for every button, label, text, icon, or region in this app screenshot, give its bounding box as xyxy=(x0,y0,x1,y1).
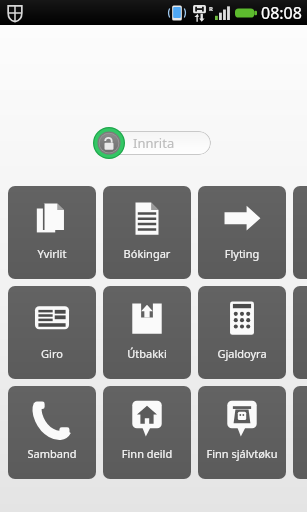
staticText: Útbakki xyxy=(103,346,191,361)
staticText: Finn sjálvtøku xyxy=(198,446,286,461)
staticText: Giro xyxy=(8,346,96,361)
button[interactable]: More xyxy=(293,286,307,379)
button[interactable]: Finn deild xyxy=(103,386,191,479)
button[interactable]: Samband xyxy=(8,386,96,479)
staticText: Innrita xyxy=(133,134,175,152)
staticText: Yvirlit xyxy=(8,246,96,261)
staticText: R xyxy=(209,5,213,13)
button[interactable]: Útbakki xyxy=(103,286,191,379)
staticText: Bókingar xyxy=(103,246,191,261)
button[interactable]: More xyxy=(293,386,307,479)
button[interactable]: Giro xyxy=(8,286,96,379)
staticText: Samband xyxy=(8,446,96,461)
staticText: 08:08 xyxy=(261,2,302,24)
button[interactable]: Innrita xyxy=(95,131,211,155)
button[interactable]: Gjaldoyra xyxy=(198,286,286,379)
button[interactable]: More xyxy=(293,186,307,279)
staticText: Flyting xyxy=(198,246,286,261)
button[interactable]: Finn sjálvtøku xyxy=(198,386,286,479)
staticText: Finn deild xyxy=(103,446,191,461)
staticText: Gjaldoyra xyxy=(198,346,286,361)
button[interactable]: Flyting xyxy=(198,186,286,279)
button[interactable]: Innrita login xyxy=(93,127,125,159)
button[interactable]: Yvirlit xyxy=(8,186,96,279)
button[interactable]: Bókingar xyxy=(103,186,191,279)
